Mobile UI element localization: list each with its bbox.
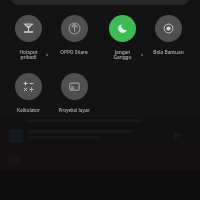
button[interactable]: Jangan Ganggu [99,15,145,61]
button[interactable]: Hotspot pribadi [5,15,51,61]
staticText: Bola Bantuan [153,49,184,56]
button[interactable]: Kalkulator [5,73,51,114]
staticText: Proyeksi layar [58,107,90,114]
button[interactable]: Proyeksi layar [51,73,97,114]
button[interactable]: Bola Bantuan [145,15,191,56]
button[interactable]: OPPO Share [51,15,97,56]
staticText: Hotspot pribadi [19,49,38,61]
staticText: Jangan Ganggu [113,49,132,61]
staticText: OPPO Share [60,49,88,56]
staticText: Kalkulator [17,107,40,114]
button[interactable] [0,126,200,148]
